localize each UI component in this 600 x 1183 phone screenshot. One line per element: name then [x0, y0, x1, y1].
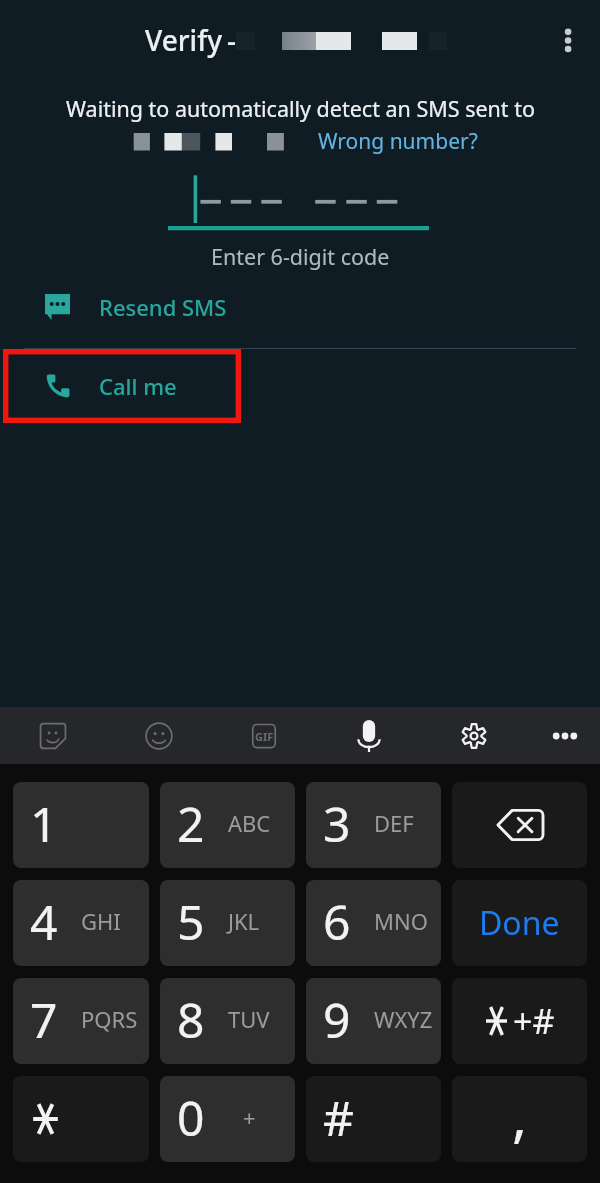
- button[interactable]: Done: [452, 880, 587, 966]
- button[interactable]: 7: [13, 978, 149, 1064]
- button[interactable]: #: [306, 1076, 441, 1162]
- staticText: Waiting to automatically detect an SMS s…: [66, 94, 535, 123]
- staticText: WXYZ: [374, 1004, 433, 1034]
- staticText: GHI: [81, 906, 121, 936]
- staticText: TUV: [228, 1004, 270, 1034]
- staticText: ,: [512, 1077, 528, 1153]
- staticText: 3: [323, 791, 351, 856]
- staticText: 8: [177, 987, 205, 1052]
- button[interactable]: 1: [13, 782, 149, 868]
- button[interactable]: Stickers: [27, 707, 79, 764]
- staticText: 4: [30, 889, 58, 954]
- button[interactable]: More options: [540, 0, 596, 70]
- staticText: +#: [513, 998, 555, 1044]
- button[interactable]: More options: [539, 707, 591, 764]
- staticText: Resend SMS: [99, 292, 227, 322]
- staticText: #: [323, 1085, 355, 1150]
- staticText: Verify: [145, 21, 222, 59]
- staticText: -: [227, 21, 236, 59]
- button[interactable]: 5: [160, 880, 295, 966]
- button[interactable]: 9: [306, 978, 441, 1064]
- staticText: 7: [30, 987, 58, 1052]
- button[interactable]: 4: [13, 880, 149, 966]
- button[interactable]: Resend SMS: [0, 284, 600, 330]
- staticText: 9: [323, 987, 351, 1052]
- staticText: Wrong number?: [318, 127, 478, 156]
- staticText: PQRS: [81, 1004, 138, 1034]
- staticText: Enter 6-digit code: [211, 242, 390, 271]
- button[interactable]: [13, 1076, 149, 1162]
- button[interactable]: 6: [306, 880, 441, 966]
- staticText: Call me: [99, 371, 177, 401]
- staticText: DEF: [374, 808, 414, 838]
- staticText: MNO: [374, 906, 428, 936]
- staticText: +: [243, 1102, 256, 1132]
- button[interactable]: Backspace: [452, 782, 587, 868]
- staticText: ABC: [228, 808, 271, 838]
- button[interactable]: 0: [160, 1076, 295, 1162]
- staticText: 1: [30, 791, 58, 856]
- staticText: Done: [479, 901, 560, 945]
- button[interactable]: Settings: [448, 707, 500, 764]
- other: Backspace: [452, 782, 587, 868]
- button[interactable]: GIF: [238, 707, 290, 764]
- button[interactable]: 3: [306, 782, 441, 868]
- staticText: 2: [177, 791, 205, 856]
- staticText: 5: [177, 889, 205, 954]
- staticText: 6: [323, 889, 351, 954]
- button[interactable]: Voice input: [343, 707, 395, 764]
- button[interactable]: +#: [452, 978, 587, 1064]
- button[interactable]: 2: [160, 782, 295, 868]
- button[interactable]: Call me: [0, 363, 600, 409]
- staticText: 0: [177, 1085, 205, 1150]
- staticText: GIF: [255, 729, 274, 744]
- staticText: JKL: [228, 906, 260, 936]
- button[interactable]: 8: [160, 978, 295, 1064]
- button[interactable]: ,: [452, 1076, 587, 1162]
- button[interactable]: Wrong number?: [310, 123, 486, 160]
- button[interactable]: Emoji: [133, 707, 185, 764]
